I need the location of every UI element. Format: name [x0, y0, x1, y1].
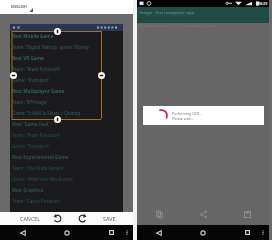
staticText: Team: 'Team Panzoom' — [12, 132, 61, 138]
staticText: Game: 'It Well Is Sleep' s Quiting' — [12, 110, 81, 116]
button[interactable]: Rotate left — [48, 212, 66, 225]
staticText: Best VR Game — [12, 55, 44, 61]
staticText: SAVE — [103, 215, 116, 222]
button[interactable]: Recents — [225, 225, 269, 240]
staticText: Best 'Game Feel' — [12, 121, 50, 127]
button[interactable]: More options — [126, 230, 128, 235]
button[interactable]: SAVE — [93, 212, 125, 225]
staticText: Team: 'The Dude Sonum' — [12, 165, 65, 171]
staticText: Team: 'Cauch Potatoes' — [12, 198, 61, 204]
button[interactable]: CANCEL — [10, 212, 50, 225]
button[interactable]: Back — [0, 225, 45, 240]
button[interactable]: Home — [45, 225, 89, 240]
staticText: Team: 'Digital Melody' game: 'Manky' — [12, 44, 91, 50]
button[interactable]: Back — [137, 225, 181, 240]
staticText: Game: 'Hold Your Revolution' — [12, 176, 74, 182]
staticText: Game: 'Transport' — [12, 77, 50, 83]
staticText: Game: 'Transport' — [12, 143, 50, 149]
button[interactable]: Share — [181, 203, 225, 225]
staticText: Best Experimental Game — [12, 154, 69, 160]
staticText: Image - Text recognition app — [140, 10, 194, 15]
button[interactable]: Copy — [137, 203, 181, 225]
staticText: ENGLISH — [11, 4, 27, 9]
staticText: Performing OCR.. — [172, 111, 202, 116]
button[interactable]: Recents — [89, 225, 133, 240]
staticText: Team: 'Team Panzoom' — [12, 66, 61, 72]
button[interactable]: Save — [225, 203, 269, 225]
staticText: Best Graphics — [12, 187, 44, 193]
staticText: Best Multiplayer Game — [12, 88, 65, 94]
staticText: CANCEL — [20, 215, 41, 222]
button[interactable]: More options — [262, 230, 264, 235]
staticText: Best Mobile Game — [12, 33, 54, 39]
staticText: Best Mobile Game Team: 'Digital Melody' … — [139, 23, 215, 28]
staticText: Please wait... — [172, 116, 194, 121]
button[interactable]: Rotate right — [73, 212, 91, 225]
staticText: 18:39 — [258, 1, 268, 6]
staticText: Team: 'SPYmagic' — [12, 99, 49, 105]
button[interactable]: Home — [181, 225, 225, 240]
